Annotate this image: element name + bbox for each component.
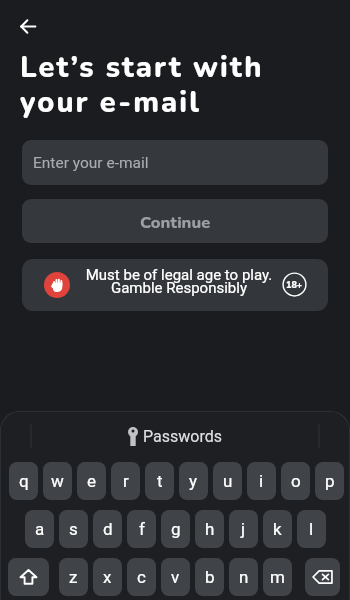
button[interactable]: d bbox=[93, 510, 122, 548]
staticText: i bbox=[259, 471, 264, 491]
staticText: c bbox=[137, 567, 146, 587]
button[interactable]: n bbox=[229, 558, 258, 596]
button[interactable]: u bbox=[213, 462, 242, 500]
button[interactable]: x bbox=[93, 558, 122, 596]
button[interactable]: s bbox=[59, 510, 88, 548]
staticText: m bbox=[270, 567, 285, 587]
button[interactable]: p bbox=[315, 462, 344, 500]
staticText: o bbox=[291, 471, 301, 491]
staticText: h bbox=[205, 519, 215, 539]
staticText: f bbox=[139, 519, 145, 539]
button[interactable]: m bbox=[263, 558, 292, 596]
button[interactable]: z bbox=[59, 558, 88, 596]
button[interactable]: Shift bbox=[8, 558, 49, 596]
staticText: a bbox=[35, 519, 45, 539]
button[interactable]: t bbox=[145, 462, 174, 500]
staticText: p bbox=[325, 471, 335, 491]
staticText: l bbox=[309, 519, 314, 539]
button[interactable]: c bbox=[127, 558, 156, 596]
button[interactable]: v bbox=[161, 558, 190, 596]
staticText: s bbox=[69, 519, 78, 539]
staticText: k bbox=[273, 519, 282, 539]
staticText: b bbox=[205, 567, 215, 587]
staticText: g bbox=[171, 519, 181, 539]
staticText: w bbox=[51, 471, 64, 491]
button[interactable]: l bbox=[297, 510, 326, 548]
staticText: z bbox=[69, 567, 78, 587]
button[interactable]: g bbox=[161, 510, 190, 548]
staticText: r bbox=[123, 471, 129, 491]
button[interactable]: Backspace bbox=[305, 558, 340, 596]
staticText: x bbox=[103, 567, 112, 587]
staticText: q bbox=[19, 471, 29, 491]
button[interactable]: a bbox=[25, 510, 54, 548]
button[interactable]: f bbox=[127, 510, 156, 548]
button[interactable]: Enter your e-mail bbox=[22, 140, 328, 185]
staticText: j bbox=[241, 519, 246, 539]
staticText: Passwords bbox=[143, 427, 222, 446]
button[interactable]: Must be of legal age to play. Gamble Res… bbox=[22, 259, 328, 311]
staticText: u bbox=[223, 471, 233, 491]
staticText: v bbox=[171, 567, 180, 587]
staticText: Enter your e-mail bbox=[33, 154, 149, 172]
staticText: 18+ bbox=[286, 279, 303, 291]
staticText: y bbox=[189, 471, 198, 491]
button[interactable]: k bbox=[263, 510, 292, 548]
button[interactable]: j bbox=[229, 510, 258, 548]
button[interactable]: r bbox=[111, 462, 140, 500]
staticText: Continue bbox=[140, 211, 211, 234]
staticText: Must be of legal age to play. Gamble Res… bbox=[67, 266, 291, 297]
button[interactable]: Back bbox=[10, 8, 46, 44]
button[interactable]: i bbox=[247, 462, 276, 500]
staticText: d bbox=[103, 519, 113, 539]
button[interactable]: Continue bbox=[22, 199, 328, 243]
staticText: t bbox=[157, 471, 163, 491]
button[interactable]: o bbox=[281, 462, 310, 500]
button[interactable]: e bbox=[77, 462, 106, 500]
staticText: Let’s start with your e-mail bbox=[20, 48, 264, 122]
button[interactable]: y bbox=[179, 462, 208, 500]
staticText: n bbox=[239, 567, 249, 587]
button[interactable]: Passwords bbox=[128, 427, 222, 446]
button[interactable]: h bbox=[195, 510, 224, 548]
button[interactable]: q bbox=[9, 462, 38, 500]
button[interactable]: w bbox=[43, 462, 72, 500]
button[interactable]: b bbox=[195, 558, 224, 596]
staticText: e bbox=[87, 471, 97, 491]
